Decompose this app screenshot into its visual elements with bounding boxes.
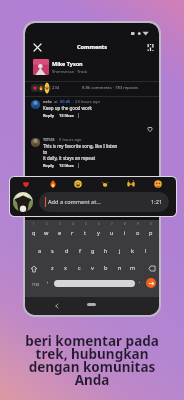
- staticText: .: [139, 278, 141, 285]
- staticText: 13 likes: [59, 163, 74, 168]
- staticText: it daily, it stays on repeat: [43, 155, 96, 161]
- staticText: 6: [98, 222, 100, 226]
- staticText: u: [110, 229, 114, 237]
- staticText: b: [104, 264, 108, 272]
- button[interactable]: Like: [144, 175, 156, 187]
- staticText: 3: [59, 222, 61, 226]
- staticText: 13 likes: [59, 113, 74, 118]
- staticText: d: [65, 247, 69, 255]
- staticText: t: [84, 229, 87, 237]
- button[interactable]: u: [105, 227, 118, 238]
- staticText: nela: [43, 99, 52, 104]
- button[interactable]: h: [99, 245, 112, 256]
- staticText: 0: [150, 222, 152, 226]
- staticText: 234: [52, 85, 60, 91]
- staticText: h: [104, 247, 108, 255]
- button[interactable]: z: [46, 262, 59, 274]
- staticText: to: [43, 149, 48, 155]
- staticText: 8: [124, 222, 126, 226]
- button[interactable]: r: [66, 227, 79, 238]
- staticText: Comments: [25, 43, 159, 51]
- button[interactable]: Space: [54, 280, 135, 287]
- staticText: v: [91, 264, 94, 272]
- staticText: 00:45: [60, 99, 71, 104]
- staticText: l: [145, 247, 147, 255]
- button[interactable]: v: [86, 262, 99, 274]
- staticText: a: [38, 247, 42, 255]
- staticText: k: [131, 247, 134, 255]
- button[interactable]: Laugh: [72, 178, 84, 190]
- staticText: j: [119, 247, 121, 255]
- staticText: m: [130, 264, 136, 272]
- staticText: 2: [46, 222, 48, 226]
- button[interactable]: d: [60, 245, 73, 256]
- button[interactable]: Hands: [99, 178, 111, 190]
- staticText: w: [44, 229, 49, 237]
- staticText: ?123: [32, 282, 40, 287]
- staticText: n: [118, 264, 122, 272]
- button[interactable]: m: [126, 262, 139, 274]
- staticText: z: [51, 264, 54, 272]
- button[interactable]: f: [73, 245, 86, 256]
- staticText: p: [149, 229, 153, 237]
- button[interactable]: c: [73, 262, 86, 274]
- button[interactable]: o: [131, 227, 144, 238]
- staticText: ,: [47, 278, 49, 285]
- staticText: x: [64, 264, 67, 272]
- button[interactable]: Raised hands: [125, 178, 137, 190]
- button[interactable]: i: [118, 227, 131, 238]
- staticText: c: [78, 264, 81, 272]
- staticText: f: [79, 247, 81, 255]
- button[interactable]: Reply: [43, 163, 55, 168]
- staticText: 9: [137, 222, 139, 226]
- button[interactable]: s: [46, 245, 59, 256]
- staticText: q: [32, 229, 36, 237]
- button[interactable]: Sort comments: [143, 40, 158, 54]
- staticText: 1:21: [151, 198, 163, 206]
- staticText: 7: [111, 222, 113, 226]
- button[interactable]: Fire: [47, 178, 59, 190]
- button[interactable]: TITUS: [25, 137, 159, 168]
- button[interactable]: Heart eyes: [152, 178, 164, 190]
- button[interactable]: Home: [87, 303, 96, 306]
- button[interactable]: k: [126, 245, 139, 256]
- button[interactable]: Backspace: [145, 262, 158, 275]
- staticText: s: [51, 247, 54, 255]
- button[interactable]: w: [40, 227, 53, 238]
- staticText: Mike Tyson: [52, 60, 83, 67]
- staticText: 4: [72, 222, 74, 226]
- button[interactable]: g: [86, 245, 99, 256]
- button[interactable]: Back: [51, 300, 63, 312]
- button[interactable]: nela: [25, 99, 159, 118]
- button[interactable]: p: [144, 227, 157, 238]
- staticText: i: [124, 229, 126, 237]
- staticText: o: [136, 229, 140, 237]
- button[interactable]: x: [59, 262, 72, 274]
- button[interactable]: Shift: [27, 262, 40, 275]
- button[interactable]: b: [99, 262, 112, 274]
- staticText: 1: [33, 222, 35, 226]
- button[interactable]: Love: [20, 178, 32, 190]
- button[interactable]: e: [53, 227, 66, 238]
- button[interactable]: y: [92, 227, 105, 238]
- staticText: Shemsessa · Track: [52, 69, 88, 75]
- button[interactable]: a: [33, 245, 46, 256]
- button[interactable]: l: [139, 245, 152, 256]
- staticText: · 23 hours ago: [73, 99, 100, 104]
- button[interactable]: Send: [146, 278, 156, 288]
- staticText: TITUS: [43, 137, 55, 142]
- button[interactable]: Your profile: [13, 192, 33, 212]
- button[interactable]: t: [79, 227, 92, 238]
- staticText: Add a comment at...: [48, 198, 101, 206]
- button[interactable]: j: [113, 245, 126, 256]
- button[interactable]: Reply: [43, 113, 55, 118]
- staticText: Keep up the good work: [43, 105, 92, 111]
- button[interactable]: Close: [28, 40, 46, 54]
- staticText: y: [97, 229, 100, 237]
- button[interactable]: Add a comment at...: [39, 192, 169, 212]
- button[interactable]: q: [27, 227, 40, 238]
- button[interactable]: Like: [144, 123, 156, 135]
- staticText: at: [54, 99, 58, 104]
- staticText: 8.8k comments · 783 reposts: [82, 85, 138, 91]
- button[interactable]: n: [113, 262, 126, 274]
